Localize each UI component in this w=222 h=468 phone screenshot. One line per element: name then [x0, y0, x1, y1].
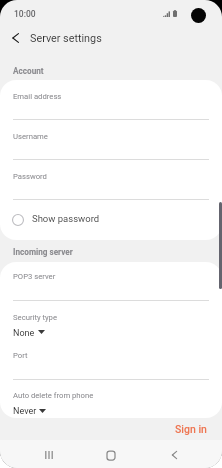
staticText: None [13, 328, 35, 339]
staticText: Never [13, 406, 37, 417]
staticText: Incoming server [13, 247, 73, 257]
staticText: Security type [13, 313, 57, 322]
button[interactable] [13, 88, 209, 119]
staticText: Sign in [175, 423, 207, 435]
button[interactable] [13, 168, 209, 199]
button[interactable] [13, 348, 209, 379]
staticText: 10:00 [14, 9, 36, 19]
staticText: POP3 server [13, 272, 56, 281]
staticText: Auto delete from phone [13, 391, 94, 400]
button[interactable] [13, 310, 209, 343]
staticText: Email address [13, 92, 62, 101]
staticText: Account [13, 66, 44, 76]
staticText: Show password [32, 213, 100, 224]
staticText: Port [13, 351, 28, 360]
button[interactable]: Back [158, 439, 190, 468]
button[interactable] [13, 269, 209, 300]
button[interactable] [0, 203, 222, 235]
button[interactable]: Home [95, 439, 127, 468]
button[interactable]: Back [6, 28, 25, 47]
button[interactable]: Sign in [168, 418, 214, 440]
staticText: Server settings [30, 32, 102, 45]
button[interactable] [13, 128, 209, 159]
button[interactable] [13, 389, 209, 422]
button[interactable]: Recent apps [33, 439, 65, 468]
staticText: Username [13, 132, 48, 141]
staticText: Password [13, 172, 47, 181]
